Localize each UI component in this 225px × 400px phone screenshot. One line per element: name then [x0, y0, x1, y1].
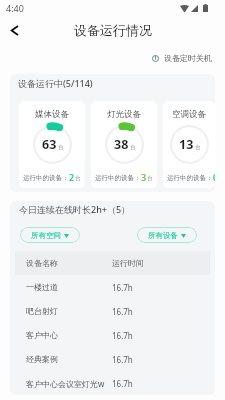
button[interactable]: 一楼过道	[10, 275, 215, 299]
staticText: 客户中心会议室灯光w	[26, 378, 112, 389]
button[interactable]: 空调设备	[163, 101, 215, 188]
staticText: 设备运行情况	[74, 22, 152, 38]
button[interactable]: 客户中心会议室灯光w	[10, 371, 215, 395]
staticText: 经典案例	[26, 354, 112, 364]
staticText: 16.7h	[112, 306, 133, 317]
staticText: 运行中的设备：	[23, 174, 69, 182]
staticText: 13	[179, 136, 194, 153]
staticText: 运行中的设备：	[95, 174, 141, 182]
staticText: 16.7h	[112, 282, 133, 293]
button[interactable]: 灯光设备	[91, 101, 157, 188]
staticText: 吧台射灯	[26, 306, 112, 316]
staticText: 空调设备	[172, 109, 206, 120]
staticText: 63	[42, 136, 57, 153]
staticText: 台	[75, 175, 81, 182]
staticText: 4:40	[6, 2, 24, 14]
staticText: 3	[141, 171, 147, 183]
staticText: 0	[213, 171, 215, 183]
staticText: 媒体设备	[35, 109, 69, 120]
staticText: 38	[114, 136, 129, 153]
staticText: 一楼过道	[26, 282, 112, 292]
staticText: 台	[147, 175, 153, 182]
staticText: 客户中心	[26, 330, 112, 340]
staticText: 灯光设备	[107, 109, 141, 120]
staticText: 运行中的设备：	[167, 174, 213, 182]
staticText: 16.7h	[112, 354, 133, 365]
button[interactable]: Back	[1, 17, 27, 43]
button[interactable]: 所有空间	[20, 227, 80, 243]
button[interactable]: 媒体设备	[19, 101, 85, 188]
staticText: 今日连续在线时长2h+（5）	[19, 203, 131, 215]
button[interactable]: 设备定时关机	[150, 50, 214, 66]
button[interactable]: 吧台射灯	[10, 299, 215, 323]
staticText: 所有空间	[31, 231, 61, 240]
staticText: 设备运行中(5/114)	[18, 77, 93, 89]
button[interactable]: 经典案例	[10, 347, 215, 371]
staticText: 台	[195, 144, 201, 151]
staticText: 所有设备	[148, 231, 178, 240]
staticText: 16.7h	[112, 378, 133, 389]
staticText: 台	[130, 144, 136, 151]
staticText: 16.7h	[112, 330, 133, 341]
staticText: 运行时间	[112, 258, 144, 268]
staticText: 2	[69, 171, 75, 183]
staticText: 设备名称	[26, 258, 112, 268]
button[interactable]: 客户中心	[10, 323, 215, 347]
button[interactable]: 所有设备	[137, 227, 197, 243]
staticText: 设备定时关机	[164, 53, 212, 63]
staticText: 台	[58, 144, 64, 151]
